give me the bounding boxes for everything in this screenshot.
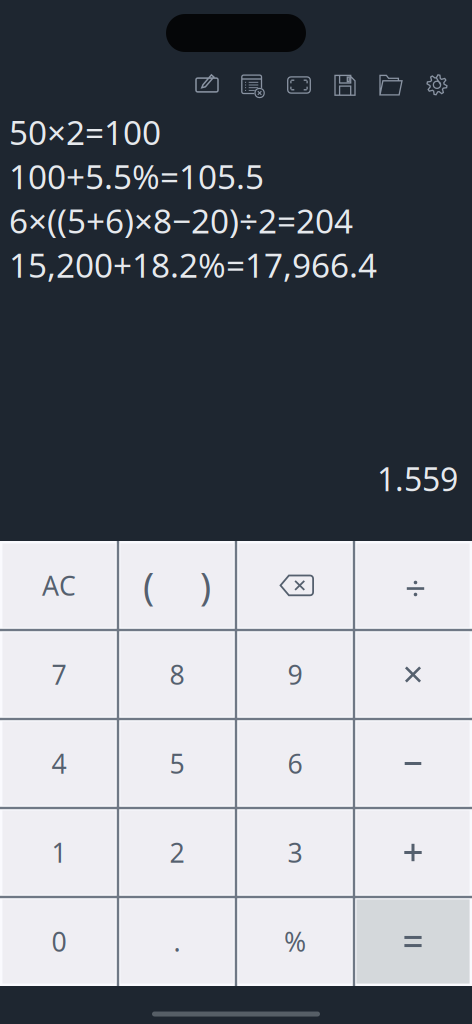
staticText: 8	[169, 657, 184, 692]
staticText: 15,200+18.2%=17,966.4	[9, 243, 377, 287]
button[interactable]: (	[118, 541, 236, 630]
button[interactable]	[354, 630, 472, 719]
button[interactable]	[354, 897, 472, 986]
staticText: 50×2=100	[9, 110, 161, 154]
staticText: 100+5.5%=105.5	[9, 154, 264, 199]
button[interactable]: 2	[118, 808, 236, 897]
button[interactable]: 1	[0, 808, 118, 897]
staticText: (	[143, 561, 154, 610]
button[interactable]: 0	[0, 897, 118, 986]
staticText: 5	[169, 746, 184, 781]
button[interactable]: 3	[236, 808, 354, 897]
button[interactable]	[354, 541, 472, 630]
button[interactable]: Tape	[276, 68, 322, 100]
button[interactable]: 5	[118, 719, 236, 808]
staticText: AC	[42, 568, 76, 603]
button[interactable]: Clear history	[230, 68, 276, 100]
staticText: 9	[287, 657, 302, 692]
staticText: .	[173, 924, 180, 959]
staticText: 1	[51, 835, 66, 870]
button[interactable]: 7	[0, 630, 118, 719]
staticText: 4	[51, 746, 66, 781]
button[interactable]: Open	[368, 68, 414, 100]
button[interactable]	[354, 719, 472, 808]
staticText: 0	[51, 924, 66, 959]
button[interactable]: AC	[0, 541, 118, 630]
button[interactable]: .	[118, 897, 236, 986]
staticText: 6	[287, 746, 302, 781]
button[interactable]	[236, 541, 354, 630]
button[interactable]: Settings	[414, 68, 460, 100]
staticText: 7	[51, 657, 66, 692]
button[interactable]: 4	[0, 719, 118, 808]
staticText: 6×((5+6)×8−20)÷2=204	[9, 198, 353, 243]
button[interactable]: 8	[118, 630, 236, 719]
button[interactable]: Save	[322, 68, 368, 100]
button[interactable]: 6	[236, 719, 354, 808]
staticText: 3	[287, 835, 302, 870]
staticText: 1.559	[377, 457, 458, 500]
staticText: )	[200, 561, 211, 610]
button[interactable]: Edit	[184, 68, 230, 100]
staticText: 2	[169, 835, 184, 870]
button[interactable]: 9	[236, 630, 354, 719]
staticText: %	[284, 924, 306, 959]
button[interactable]	[354, 808, 472, 897]
button[interactable]: %	[236, 897, 354, 986]
